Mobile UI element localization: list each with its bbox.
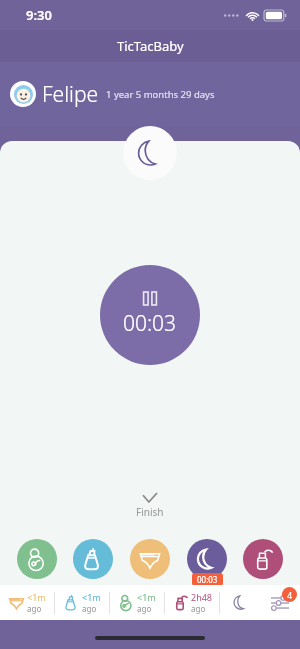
button[interactable]: Diaper history xyxy=(0,585,54,620)
button[interactable]: Breastfeeding history xyxy=(110,585,164,620)
staticText: ago xyxy=(137,603,152,614)
staticText: <1m xyxy=(137,591,156,603)
button[interactable]: Finish xyxy=(118,489,182,523)
button[interactable]: Bottle xyxy=(73,539,113,579)
button[interactable]: Pump history xyxy=(165,585,219,620)
button[interactable]: Felipe xyxy=(0,62,300,126)
button[interactable]: Bottle history xyxy=(55,585,109,620)
staticText: 2h48 xyxy=(191,591,213,603)
staticText: Finish xyxy=(136,505,164,519)
button[interactable] xyxy=(220,585,260,620)
button[interactable]: 00:03 xyxy=(100,265,200,365)
staticText: ago xyxy=(27,603,42,614)
staticText: <1m xyxy=(82,591,101,603)
staticText: TicTacBaby xyxy=(117,37,184,55)
button[interactable]: Sleep xyxy=(123,126,177,180)
staticText: ago xyxy=(191,603,206,614)
staticText: 00:03 xyxy=(197,574,218,585)
staticText: 9:30 xyxy=(26,6,52,24)
button[interactable]: Breastfeeding xyxy=(17,539,57,579)
button[interactable]: Diaper xyxy=(130,539,170,579)
staticText: 1 year 5 months 29 days xyxy=(106,88,215,101)
button[interactable]: Pump xyxy=(243,539,283,579)
button[interactable]: Sleep timer running xyxy=(187,539,227,579)
staticText: 4 xyxy=(287,589,293,601)
button[interactable]: Settings xyxy=(260,585,300,620)
staticText: 00:03 xyxy=(123,309,177,338)
staticText: <1m xyxy=(27,591,46,603)
staticText: ago xyxy=(82,603,97,614)
staticText: Felipe xyxy=(42,80,99,109)
